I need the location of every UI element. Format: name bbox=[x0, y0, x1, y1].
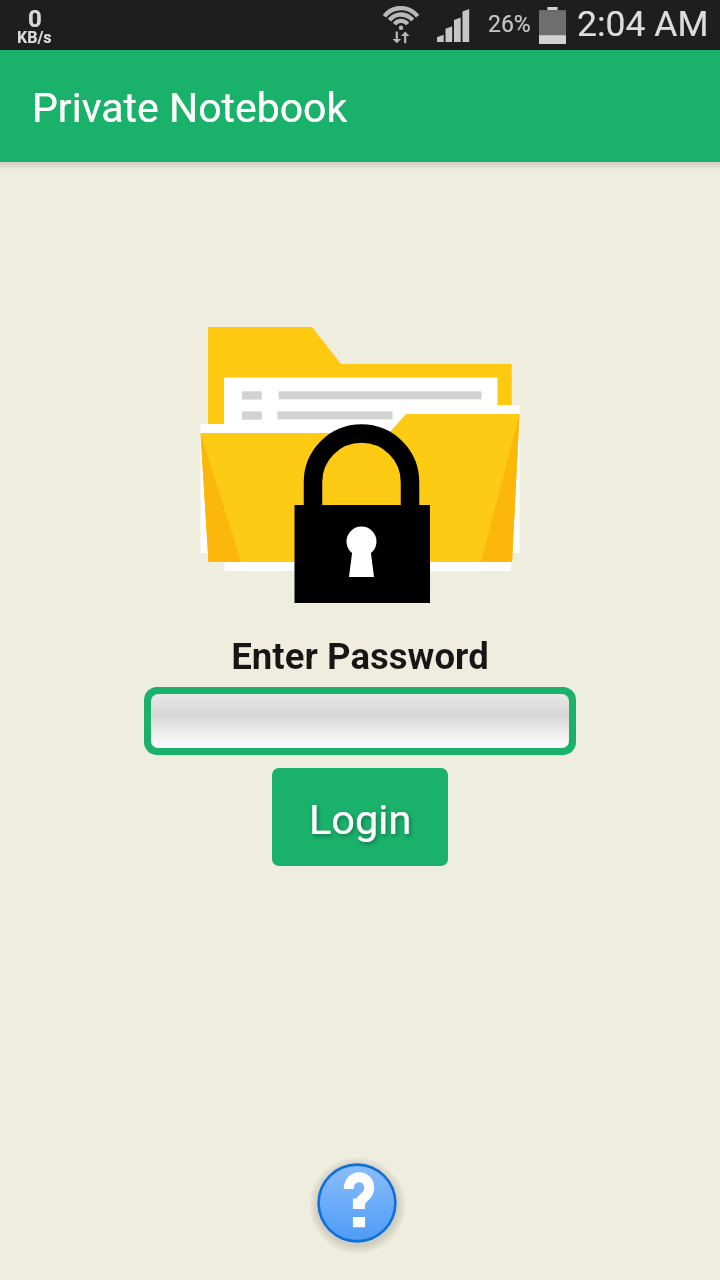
staticText: KB/s bbox=[17, 28, 52, 47]
staticText: 26% bbox=[488, 11, 531, 38]
button[interactable] bbox=[151, 694, 569, 748]
staticText: Enter Password bbox=[0, 635, 720, 678]
button[interactable]: Login bbox=[272, 768, 448, 866]
staticText: Private Notebook bbox=[32, 84, 348, 132]
staticText: 0 bbox=[28, 5, 42, 33]
staticText: 2:04 AM bbox=[577, 3, 709, 45]
button[interactable]: Help bbox=[309, 1155, 405, 1251]
staticText: Login bbox=[309, 795, 412, 844]
